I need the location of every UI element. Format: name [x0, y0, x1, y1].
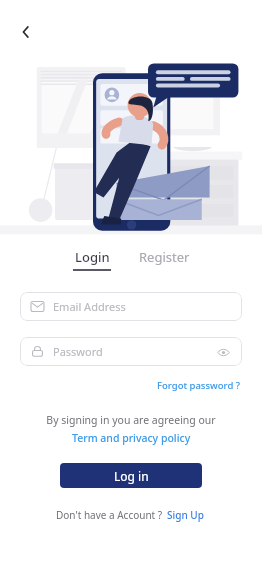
staticText: By signing in you are agreeing our	[0, 413, 262, 427]
staticText: Password	[53, 344, 215, 359]
staticText: Don't have a Account ?	[56, 508, 165, 522]
button[interactable]: Sign Up	[165, 506, 206, 524]
staticText: Log in	[114, 468, 149, 484]
button[interactable]: Register	[133, 246, 196, 268]
button[interactable]: Log in	[60, 463, 202, 488]
staticText: Term and privacy policy	[72, 431, 191, 445]
button[interactable]: Term and privacy policy	[68, 430, 195, 446]
button[interactable]: Show password	[215, 344, 231, 360]
staticText: Sign Up	[167, 508, 204, 522]
staticText: Email Address	[53, 299, 126, 314]
staticText: Login	[75, 248, 110, 266]
button[interactable]: Email Address	[20, 292, 242, 321]
button[interactable]: Login	[67, 246, 117, 273]
staticText: Forgot password ?	[157, 379, 241, 392]
button[interactable]: Password	[20, 337, 242, 366]
staticText: Register	[139, 248, 190, 266]
button[interactable]: Forgot password ?	[154, 376, 244, 395]
button[interactable]: Back	[10, 16, 42, 48]
